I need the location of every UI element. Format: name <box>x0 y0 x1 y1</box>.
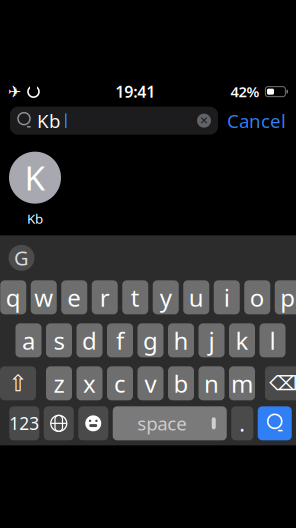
staticText: G <box>14 245 29 271</box>
button[interactable]: x <box>76 366 102 400</box>
staticText: j <box>208 324 214 356</box>
staticText: ⇧ <box>8 370 27 396</box>
button[interactable]: Shift <box>0 366 36 400</box>
staticText: q <box>6 281 21 313</box>
button[interactable]: l <box>259 323 285 357</box>
button[interactable]: c <box>107 366 133 400</box>
staticText: K <box>24 155 45 200</box>
button[interactable]: e <box>61 280 87 314</box>
staticText: m <box>231 367 253 399</box>
button[interactable]: Numbers <box>9 406 39 440</box>
button[interactable]: Cancel <box>227 108 286 133</box>
staticText: a <box>22 324 35 356</box>
staticText: o <box>250 281 265 313</box>
button[interactable]: k <box>229 323 255 357</box>
staticText: b <box>173 367 188 399</box>
staticText: g <box>143 324 158 356</box>
button[interactable]: Period <box>231 406 253 440</box>
button[interactable]: z <box>46 366 72 400</box>
button[interactable]: n <box>198 366 224 400</box>
staticText: ✕ <box>199 115 208 127</box>
staticText: h <box>173 324 188 356</box>
staticText: . <box>239 409 245 437</box>
staticText: Kb <box>27 210 43 227</box>
staticText: t <box>131 281 140 313</box>
button[interactable]: w <box>31 280 57 314</box>
staticText: z <box>53 367 64 399</box>
button[interactable]: Search <box>258 406 292 440</box>
staticText: 19:41 <box>115 81 155 102</box>
staticText: Kb <box>37 108 60 133</box>
staticText: d <box>82 324 97 356</box>
button[interactable]: r <box>92 280 118 314</box>
button[interactable]: Next keyboard <box>44 406 74 440</box>
button[interactable]: Delete <box>265 366 296 400</box>
staticText: c <box>114 367 126 399</box>
staticText: 42% <box>230 82 259 101</box>
staticText: s <box>53 324 64 356</box>
button[interactable]: y <box>153 280 179 314</box>
button[interactable]: m <box>229 366 255 400</box>
button[interactable]: a <box>15 323 41 357</box>
button[interactable]: Space <box>113 406 227 440</box>
button[interactable]: v <box>137 366 163 400</box>
button[interactable]: u <box>183 280 209 314</box>
button[interactable]: o <box>244 280 270 314</box>
staticText: w <box>34 281 53 313</box>
staticText: x <box>83 367 96 399</box>
button[interactable]: b <box>168 366 194 400</box>
staticText: e <box>67 281 81 313</box>
staticText: p <box>280 281 295 313</box>
button[interactable]: q <box>0 280 26 314</box>
button[interactable]: f <box>107 323 133 357</box>
staticText: l <box>269 324 275 356</box>
staticText: y <box>160 281 172 313</box>
staticText: ✈ <box>8 83 21 101</box>
button[interactable]: Assistant <box>7 244 35 272</box>
button[interactable]: p <box>275 280 296 314</box>
staticText: space <box>137 411 187 436</box>
button[interactable]: d <box>76 323 102 357</box>
staticText: i <box>224 281 230 313</box>
button[interactable]: h <box>168 323 194 357</box>
staticText: Cancel <box>227 108 286 133</box>
staticText: ⌫ <box>269 372 296 395</box>
button[interactable]: Emoji <box>78 406 108 440</box>
button[interactable]: t <box>122 280 148 314</box>
staticText: v <box>144 367 156 399</box>
button[interactable]: i <box>214 280 240 314</box>
button[interactable]: g <box>137 323 163 357</box>
button[interactable]: K <box>0 152 70 227</box>
staticText: k <box>235 324 248 356</box>
button[interactable]: j <box>198 323 224 357</box>
staticText: 123 <box>9 412 39 435</box>
staticText: r <box>100 281 110 313</box>
staticText: u <box>189 281 204 313</box>
staticText: f <box>116 324 124 356</box>
button[interactable]: s <box>46 323 72 357</box>
button[interactable]: Clear text <box>196 113 212 129</box>
staticText: n <box>204 367 219 399</box>
